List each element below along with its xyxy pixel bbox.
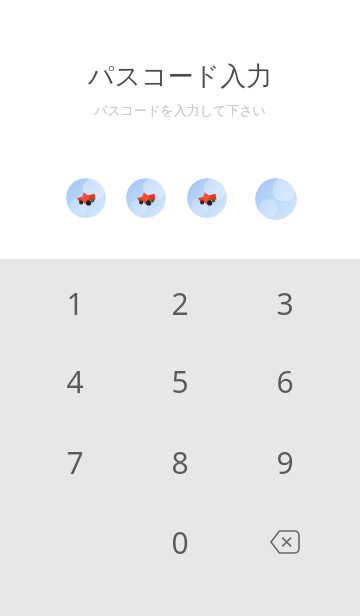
staticText: 6 bbox=[276, 361, 294, 402]
button[interactable]: 5 bbox=[128, 342, 232, 420]
staticText: 9 bbox=[276, 442, 294, 483]
button[interactable]: 6 bbox=[233, 342, 337, 420]
staticText: 3 bbox=[276, 283, 294, 324]
staticText: パスコードを入力して下さい bbox=[0, 102, 360, 118]
staticText: 2 bbox=[171, 283, 189, 324]
staticText: 5 bbox=[171, 361, 189, 402]
staticText: パスコード入力 bbox=[0, 60, 360, 93]
button[interactable]: Backspace bbox=[233, 503, 337, 581]
button[interactable]: 8 bbox=[128, 423, 232, 501]
staticText: 1 bbox=[66, 283, 84, 324]
staticText: 0 bbox=[171, 522, 189, 563]
button[interactable]: 4 bbox=[23, 342, 127, 420]
staticText: 4 bbox=[66, 361, 84, 402]
button[interactable]: 1 bbox=[23, 264, 127, 342]
button[interactable]: 2 bbox=[128, 264, 232, 342]
button[interactable]: 3 bbox=[233, 264, 337, 342]
staticText: 7 bbox=[66, 442, 84, 483]
button[interactable]: 7 bbox=[23, 423, 127, 501]
staticText: 8 bbox=[171, 442, 189, 483]
button[interactable]: 9 bbox=[233, 423, 337, 501]
button[interactable]: 0 bbox=[128, 503, 232, 581]
